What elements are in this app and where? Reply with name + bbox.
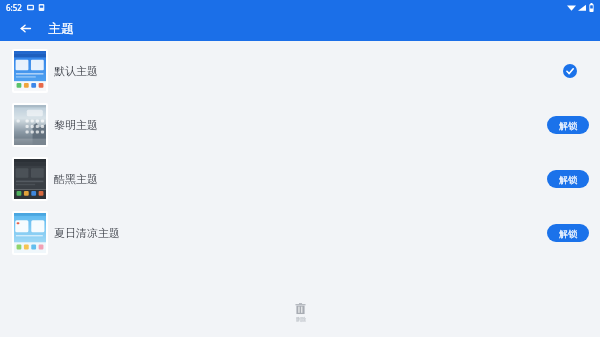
button[interactable]: 解锁 — [547, 170, 589, 188]
button[interactable]: 黎明主题 — [0, 98, 600, 152]
button[interactable]: 默认主题 — [0, 44, 600, 98]
button[interactable]: Back — [13, 16, 37, 40]
button[interactable]: 解锁 — [547, 224, 589, 242]
staticText: 解锁 — [559, 174, 577, 185]
staticText: 默认主题 — [54, 64, 98, 78]
staticText: 酷黑主题 — [54, 172, 98, 186]
staticText: 主题 — [48, 20, 74, 36]
staticText: 删除 — [296, 316, 306, 322]
staticText: 黎明主题 — [54, 118, 98, 132]
staticText: 夏日清凉主题 — [54, 226, 120, 240]
staticText: 6:52 — [6, 2, 22, 13]
button[interactable]: 夏日清凉主题 — [0, 206, 600, 260]
staticText: 解锁 — [559, 228, 577, 239]
button[interactable]: Selected — [560, 61, 580, 81]
button[interactable]: Delete — [289, 301, 312, 324]
button[interactable]: 解锁 — [547, 116, 589, 134]
staticText: 解锁 — [559, 120, 577, 131]
button[interactable]: 酷黑主题 — [0, 152, 600, 206]
